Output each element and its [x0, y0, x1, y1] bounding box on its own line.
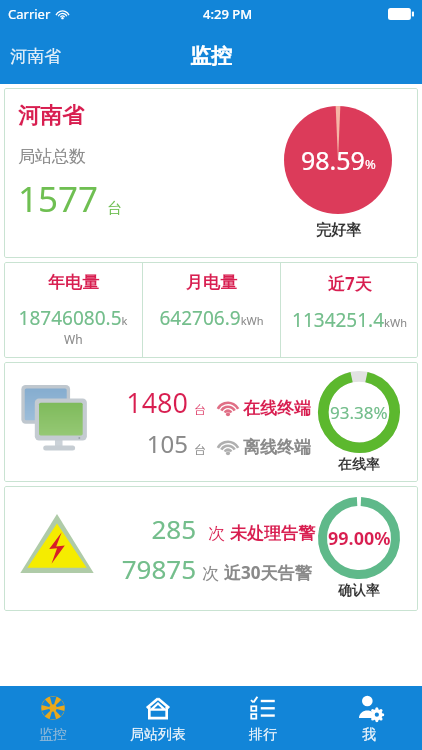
button[interactable]: 近7天: [281, 262, 418, 358]
staticText: 次: [208, 523, 225, 544]
staticText: 近7天: [328, 272, 372, 295]
staticText: 完好率: [316, 221, 361, 240]
staticText: 台: [194, 442, 206, 457]
button[interactable]: 月电量: [143, 262, 280, 358]
staticText: 1480: [112, 384, 188, 421]
staticText: Wh: [64, 331, 83, 347]
other: 局站列表: [144, 694, 172, 722]
staticText: 18746080.5k: [4, 305, 142, 331]
button[interactable]: 局站列表: [105, 686, 210, 750]
staticText: 河南省: [10, 46, 61, 67]
button[interactable]: 排行: [210, 686, 316, 750]
staticText: %: [365, 155, 376, 173]
staticText: 79875: [104, 551, 196, 586]
button[interactable]: 河南省: [4, 88, 418, 258]
staticText: 离线终端: [243, 437, 311, 458]
other: 我: [355, 694, 383, 722]
staticText: 285: [104, 511, 196, 546]
staticText: 在线终端: [243, 398, 311, 419]
staticText: 月电量: [186, 272, 237, 293]
staticText: 监控: [39, 726, 67, 744]
staticText: 105: [112, 427, 188, 460]
staticText: 台: [107, 199, 122, 218]
staticText: 确认率: [338, 582, 380, 600]
button[interactable]: 285: [4, 486, 418, 611]
staticText: Carrier: [8, 5, 51, 23]
staticText: 未处理告警: [230, 523, 315, 544]
other: 监控: [39, 694, 67, 722]
staticText: 局站列表: [130, 726, 186, 744]
staticText: 监控: [190, 43, 232, 69]
staticText: 局站总数: [18, 146, 86, 167]
staticText: 1134251.4kWh: [281, 307, 418, 333]
staticText: 次: [202, 563, 219, 584]
button[interactable]: 年电量: [4, 262, 142, 358]
staticText: 年电量: [48, 272, 99, 293]
staticText: 台: [194, 402, 206, 417]
staticText: 在线率: [338, 456, 380, 474]
staticText: 我: [362, 726, 376, 744]
button[interactable]: 1480: [4, 362, 418, 482]
other: 排行: [249, 694, 277, 722]
staticText: 1577: [18, 175, 99, 223]
staticText: 642706.9kWh: [143, 305, 280, 331]
staticText: 99.00%: [328, 526, 391, 551]
staticText: 93.38%: [330, 401, 388, 424]
button[interactable]: 河南省: [0, 38, 71, 75]
staticText: 排行: [249, 726, 277, 744]
staticText: 4:29 PM: [203, 5, 253, 23]
staticText: 河南省: [18, 102, 84, 130]
button[interactable]: 监控: [0, 686, 105, 750]
button[interactable]: 我: [316, 686, 422, 750]
staticText: 98.59: [301, 143, 365, 177]
button[interactable]: 年电量: [4, 262, 418, 358]
staticText: 近30天告警: [224, 561, 312, 584]
